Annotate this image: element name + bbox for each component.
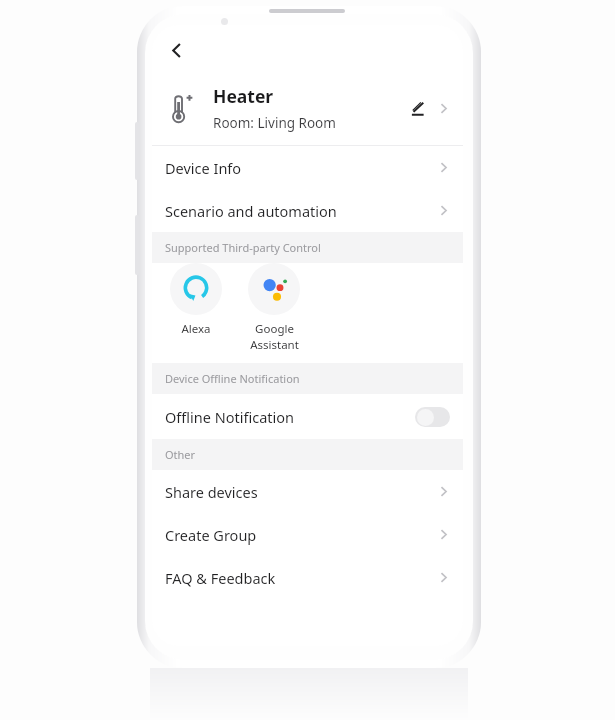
staticText: Create Group xyxy=(165,525,435,545)
staticText: Alexa xyxy=(181,321,211,337)
staticText: Google xyxy=(255,321,294,337)
staticText: Other xyxy=(165,447,196,462)
staticText: Heater xyxy=(213,84,274,108)
button[interactable]: Back xyxy=(157,31,195,69)
button[interactable]: Create Group xyxy=(152,513,463,556)
staticText: FAQ & Feedback xyxy=(165,568,435,588)
staticText: Assistant xyxy=(250,337,299,353)
staticText: Offline Notification xyxy=(165,407,415,427)
button[interactable]: Alexa xyxy=(167,263,225,337)
button[interactable]: Share devices xyxy=(152,470,463,513)
button[interactable]: Scenario and automation xyxy=(152,189,463,232)
button[interactable]: Heater xyxy=(152,71,463,145)
staticText: Device Info xyxy=(165,158,435,178)
button[interactable]: Device Info xyxy=(152,146,463,189)
staticText: Device Offline Notification xyxy=(165,371,300,386)
button[interactable]: Offline Notification toggle, off xyxy=(415,407,450,427)
button[interactable]: Google xyxy=(245,263,303,353)
staticText: Scenario and automation xyxy=(165,201,435,221)
button[interactable]: FAQ & Feedback xyxy=(152,556,463,599)
staticText: Room: Living Room xyxy=(213,114,336,132)
button[interactable]: Offline Notification xyxy=(152,394,463,439)
staticText: Share devices xyxy=(165,482,435,502)
button[interactable]: Edit device name xyxy=(399,90,435,126)
staticText: Supported Third-party Control xyxy=(165,240,321,255)
